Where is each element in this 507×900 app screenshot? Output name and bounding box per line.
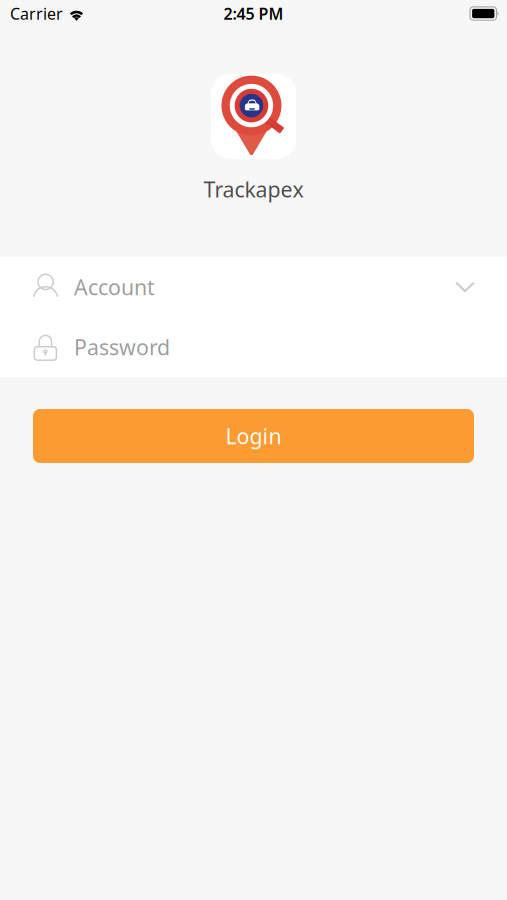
staticText: Trackapex xyxy=(203,175,303,203)
staticText: Password xyxy=(74,333,170,361)
staticText: 2:45 PM xyxy=(223,3,283,24)
staticText: Account xyxy=(74,273,155,301)
staticText: Login xyxy=(225,422,281,450)
button[interactable]: Account xyxy=(0,257,507,317)
button[interactable]: Login xyxy=(33,409,474,463)
staticText: Carrier xyxy=(10,3,63,24)
button[interactable]: Password xyxy=(0,317,507,377)
